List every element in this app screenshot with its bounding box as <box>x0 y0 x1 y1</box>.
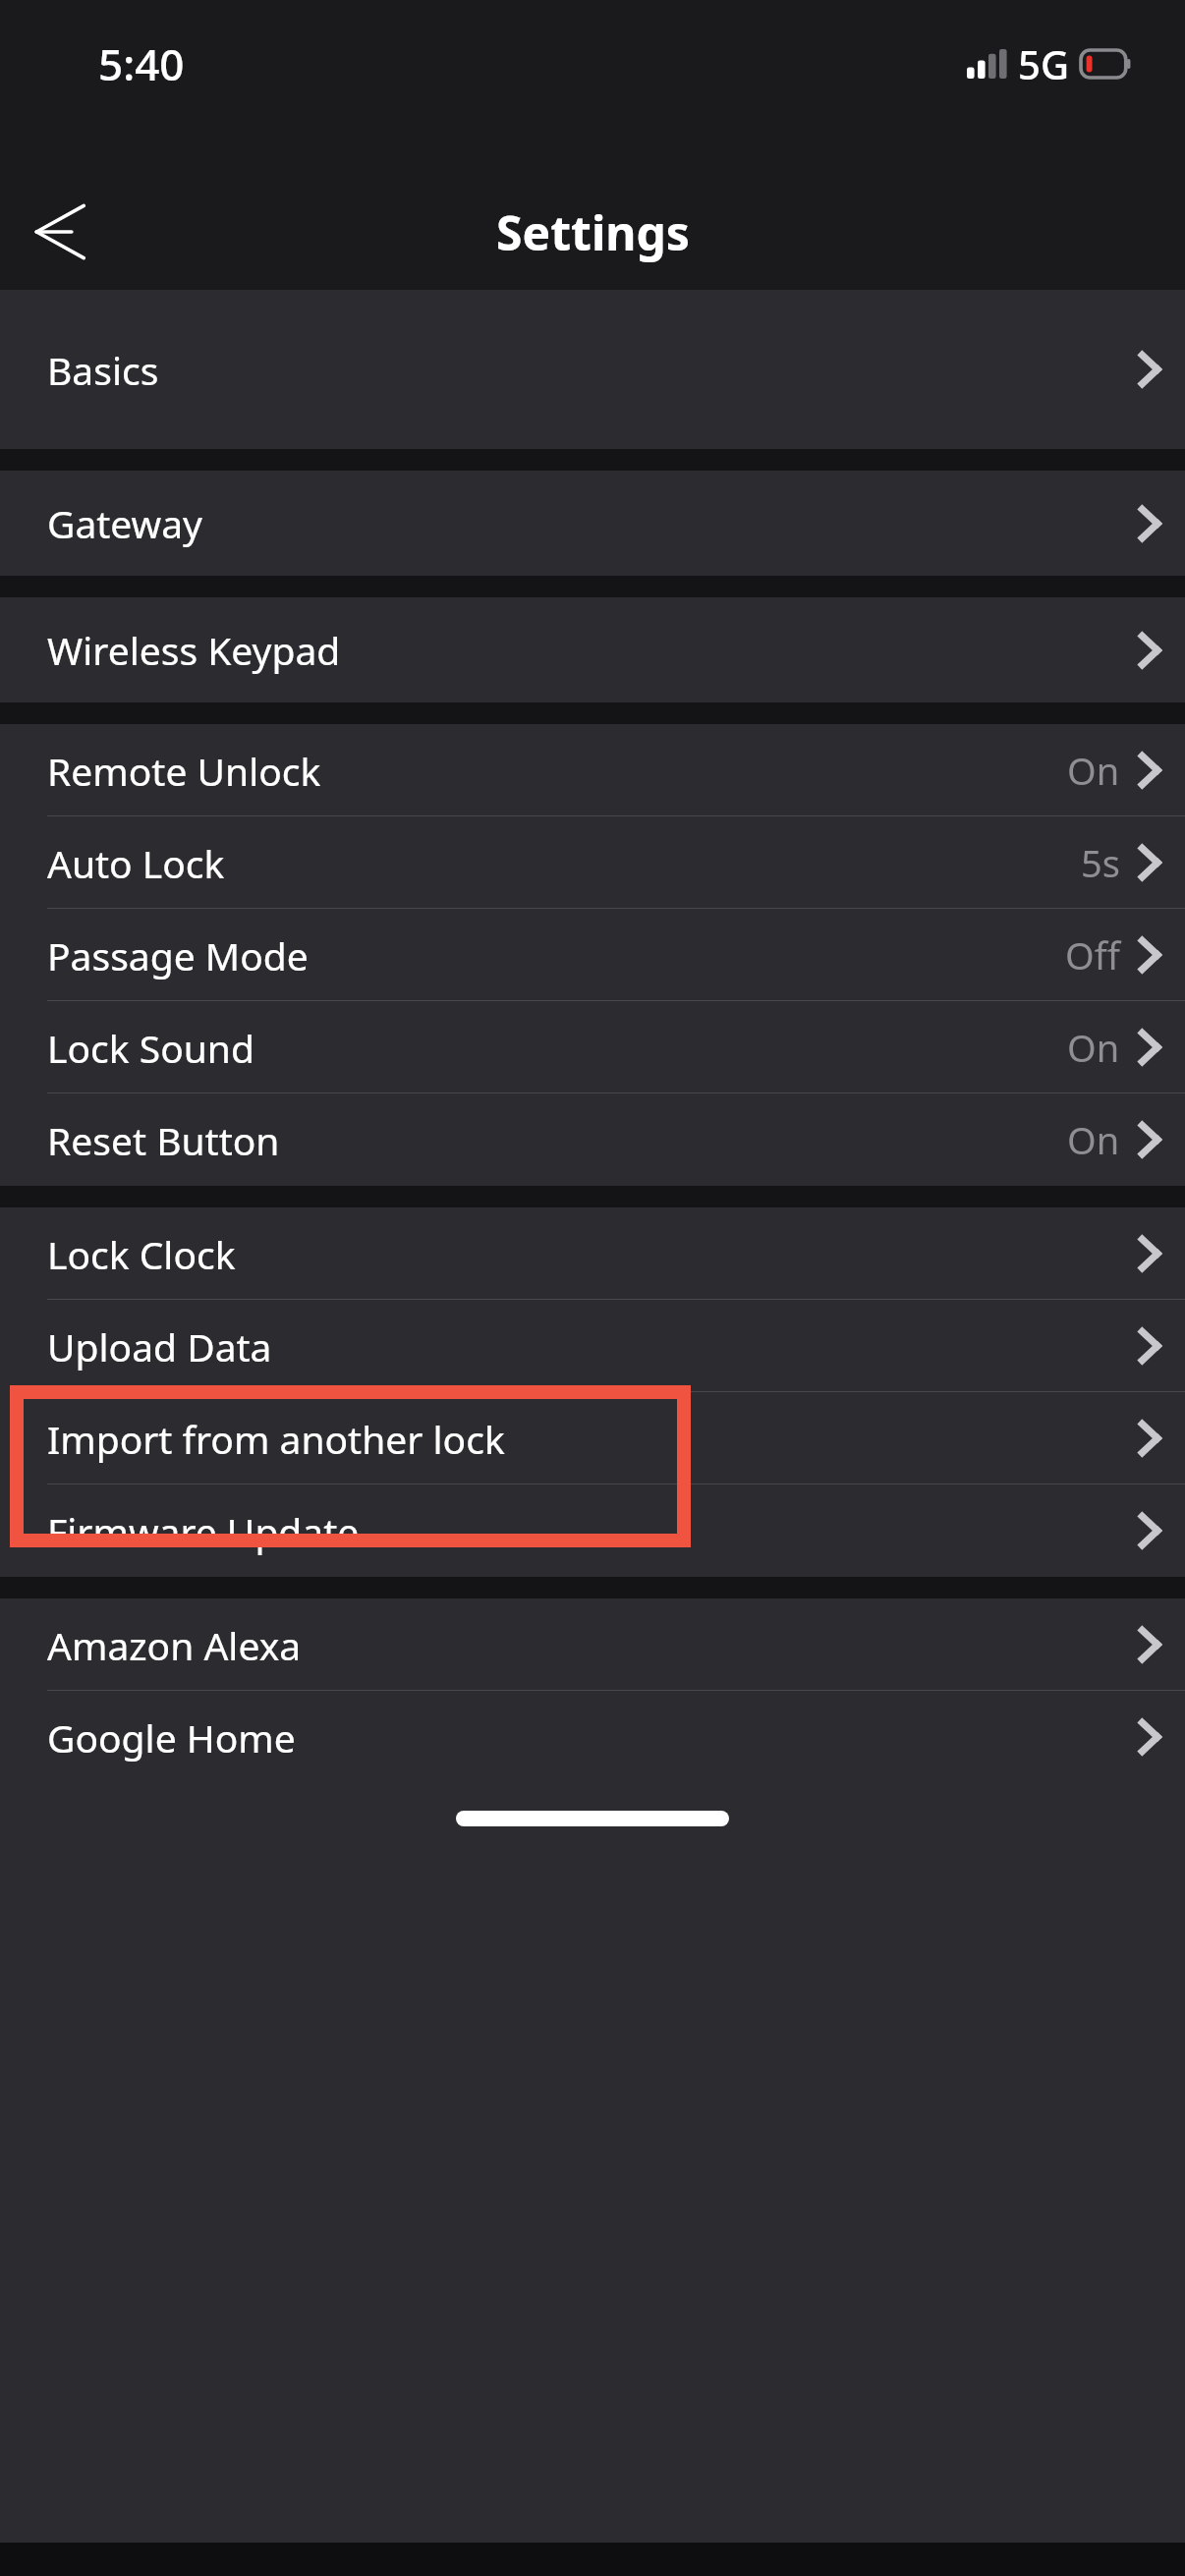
staticText: Remote Unlock <box>47 745 321 797</box>
button[interactable]: Firmware Update <box>0 1484 1185 1577</box>
staticText: 5s <box>1081 837 1120 888</box>
staticText: On <box>1067 745 1120 796</box>
button[interactable]: Gateway <box>0 471 1185 576</box>
button[interactable]: Auto Lock <box>0 816 1185 909</box>
button[interactable]: Lock Clock <box>0 1207 1185 1300</box>
staticText: Amazon Alexa <box>47 1619 302 1671</box>
staticText: Auto Lock <box>47 837 225 889</box>
button[interactable]: Remote Unlock <box>0 724 1185 816</box>
staticText: 5G <box>1018 37 1069 90</box>
staticText: Passage Mode <box>47 929 309 981</box>
staticText: Lock Sound <box>47 1022 254 1074</box>
staticText: On <box>1067 1114 1120 1165</box>
staticText: Upload Data <box>47 1320 272 1372</box>
button[interactable]: Google Home <box>0 1691 1185 1783</box>
staticText: Reset Button <box>47 1114 280 1166</box>
staticText: Gateway <box>47 497 202 549</box>
button[interactable]: Back <box>16 188 104 276</box>
staticText: Settings <box>496 200 690 264</box>
staticText: On <box>1067 1022 1120 1073</box>
staticText: Lock Clock <box>47 1228 236 1280</box>
button[interactable]: Passage Mode <box>0 909 1185 1001</box>
staticText: Basics <box>47 344 159 396</box>
staticText: Google Home <box>47 1711 296 1764</box>
button[interactable]: Amazon Alexa <box>0 1598 1185 1691</box>
button[interactable]: Import from another lock <box>0 1392 1185 1484</box>
button[interactable]: Upload Data <box>0 1300 1185 1392</box>
staticText: Wireless Keypad <box>47 624 341 676</box>
button[interactable]: Lock Sound <box>0 1001 1185 1093</box>
staticText: Off <box>1065 929 1120 980</box>
staticText: Firmware Update <box>47 1505 360 1557</box>
staticText: 5:40 <box>98 34 185 93</box>
button[interactable]: Wireless Keypad <box>0 597 1185 702</box>
button[interactable]: Reset Button <box>0 1093 1185 1186</box>
button[interactable]: Basics <box>0 290 1185 449</box>
staticText: Import from another lock <box>47 1413 505 1465</box>
